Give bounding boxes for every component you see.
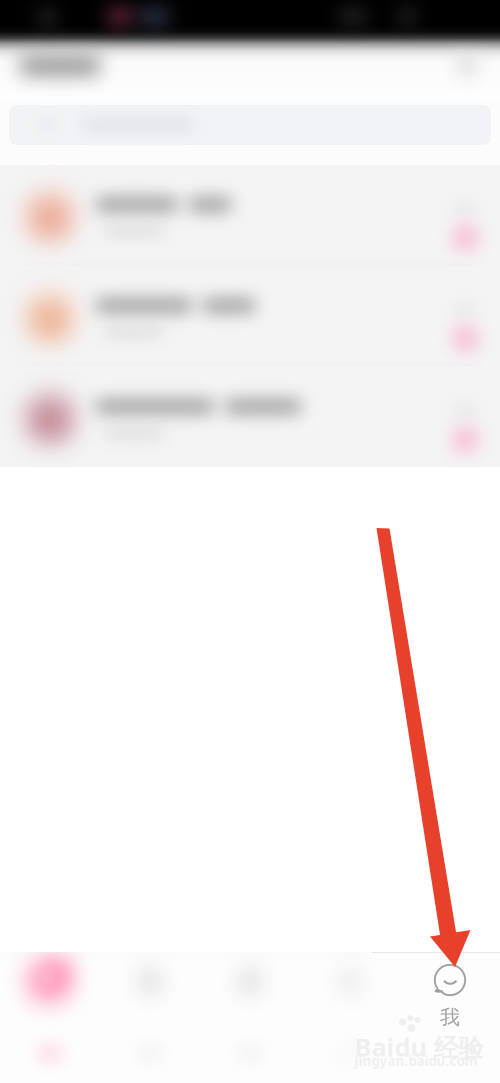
button[interactable]: Tab (0, 953, 100, 1083)
staticText: 我 (440, 1005, 460, 1030)
button[interactable]: Tab (200, 953, 300, 1083)
staticText: Baidu 经验 (354, 1030, 483, 1064)
button[interactable] (0, 165, 500, 265)
button[interactable] (0, 266, 500, 366)
button[interactable]: Tab (100, 953, 200, 1083)
button[interactable]: Tab (300, 953, 400, 1083)
button[interactable]: 我 (400, 953, 500, 1083)
staticText: jingyan.baidu.com (354, 1052, 477, 1070)
button[interactable] (0, 367, 500, 467)
